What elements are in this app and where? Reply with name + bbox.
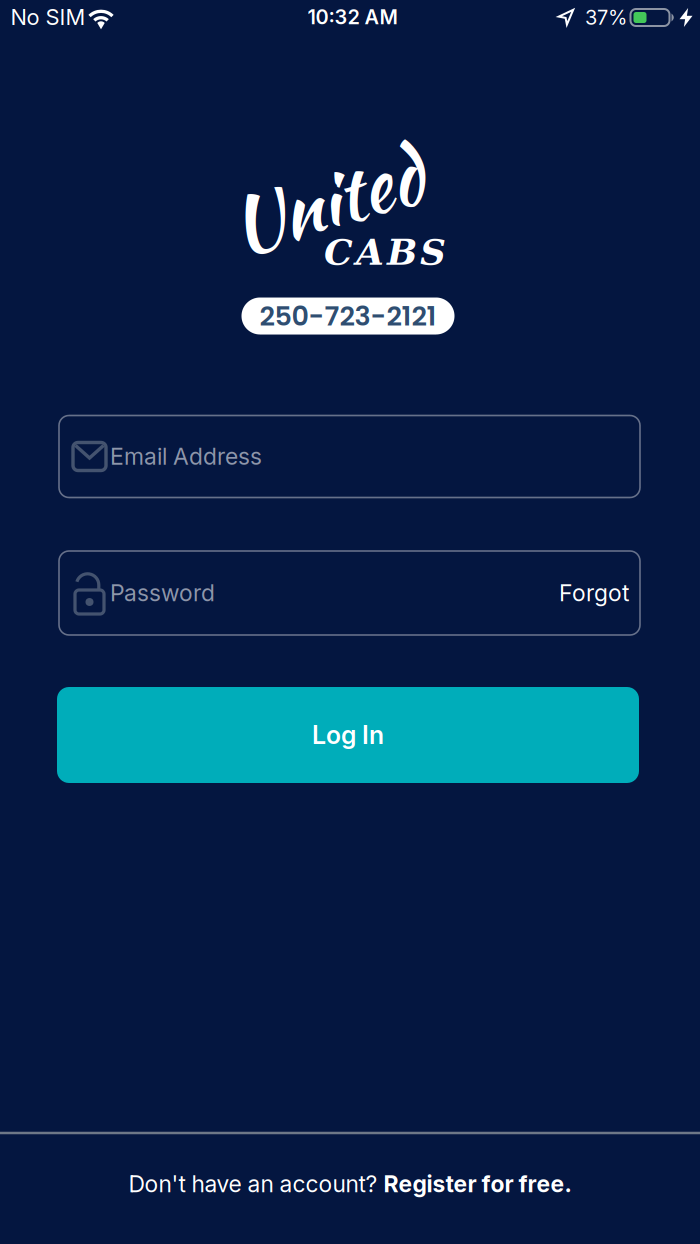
staticText: Password bbox=[110, 579, 215, 607]
staticText: Don't have an account? Register for free… bbox=[128, 1170, 571, 1197]
button[interactable]: Forgot bbox=[559, 579, 629, 607]
staticText: Email Address bbox=[110, 443, 262, 470]
staticText: Forgot bbox=[559, 579, 629, 607]
staticText: Log In bbox=[312, 720, 384, 750]
staticText: 250-723-2121 bbox=[259, 297, 436, 335]
staticText: 37% bbox=[585, 5, 627, 30]
staticText: United bbox=[228, 147, 424, 255]
staticText: No SIM bbox=[10, 4, 85, 30]
staticText: 10:32 AM bbox=[307, 5, 397, 29]
staticText: CABS bbox=[324, 231, 446, 273]
button[interactable]: Don't have an account? Register for free… bbox=[0, 1154, 700, 1214]
button[interactable]: Password bbox=[59, 551, 640, 635]
button[interactable]: Log In bbox=[57, 687, 639, 783]
button[interactable]: Email Address bbox=[59, 415, 640, 497]
